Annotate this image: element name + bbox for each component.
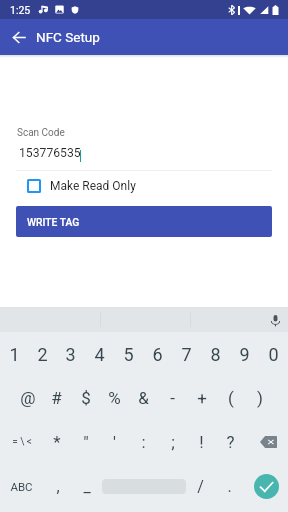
button[interactable]: @ — [14, 376, 42, 420]
staticText: ; — [171, 432, 175, 452]
button[interactable]: ! — [187, 420, 216, 464]
staticText: Make Read Only — [50, 179, 136, 193]
button[interactable]: ? — [216, 420, 245, 464]
button[interactable]: 6 — [143, 332, 172, 376]
staticText: . — [227, 477, 232, 496]
staticText: / — [197, 477, 204, 496]
button[interactable]: = \ < — [0, 420, 43, 464]
staticText: ABC — [10, 480, 33, 493]
button[interactable]: 7 — [172, 332, 201, 376]
button[interactable]: _ — [72, 464, 101, 508]
staticText: 7 — [181, 344, 192, 365]
button[interactable]: . — [215, 464, 244, 508]
button[interactable]: 0 — [259, 332, 288, 376]
staticText: NFC Setup — [36, 29, 100, 45]
staticText: 3 — [65, 344, 76, 365]
button[interactable]: ' — [100, 420, 129, 464]
button[interactable]: 5 — [114, 332, 143, 376]
staticText: 9 — [239, 344, 250, 365]
staticText: @ — [20, 388, 36, 408]
button[interactable]: 4 — [85, 332, 114, 376]
button[interactable]: 3 — [56, 332, 85, 376]
button[interactable]: Voice input — [264, 309, 286, 331]
staticText: ( — [228, 388, 234, 408]
button[interactable]: ( — [216, 376, 245, 420]
staticText: 1:25 — [10, 4, 31, 16]
staticText: + — [197, 388, 207, 408]
button[interactable]: & — [129, 376, 158, 420]
staticText: 153776535 — [19, 146, 81, 160]
button[interactable]: Back — [1, 19, 37, 55]
staticText: 2 — [37, 344, 48, 365]
button[interactable]: " — [71, 420, 100, 464]
button[interactable]: % — [100, 376, 129, 420]
button[interactable]: , — [43, 464, 72, 508]
staticText: - — [170, 388, 175, 408]
button[interactable]: Space — [101, 464, 186, 508]
staticText: % — [108, 388, 121, 408]
staticText: & — [138, 388, 149, 408]
staticText: _ — [83, 477, 91, 496]
button[interactable]: Make Read Only — [0, 174, 288, 198]
staticText: WRITE TAG — [27, 216, 80, 228]
staticText: 1 — [9, 344, 20, 365]
button[interactable]: - — [158, 376, 187, 420]
button[interactable]: 2 — [28, 332, 56, 376]
button[interactable]: # — [42, 376, 71, 420]
button[interactable]: Backspace — [245, 420, 288, 464]
staticText: ) — [257, 388, 263, 408]
staticText: $ — [81, 388, 91, 408]
button[interactable]: ) — [245, 376, 274, 420]
staticText: ' — [113, 432, 116, 452]
button[interactable]: 8 — [201, 332, 230, 376]
staticText: = \ < — [12, 436, 32, 448]
staticText: ? — [226, 432, 235, 452]
staticText: 5 — [123, 344, 134, 365]
button[interactable]: / — [186, 464, 215, 508]
staticText: : — [141, 432, 146, 452]
button[interactable]: $ — [71, 376, 100, 420]
staticText: , — [56, 477, 60, 496]
staticText: 8 — [210, 344, 221, 365]
staticText: 6 — [152, 344, 163, 365]
button[interactable]: Enter — [244, 464, 288, 508]
staticText: 4 — [94, 344, 105, 365]
button[interactable]: 9 — [230, 332, 259, 376]
button[interactable]: 1 — [0, 332, 28, 376]
button[interactable]: ; — [158, 420, 187, 464]
staticText: " — [83, 432, 89, 452]
staticText: 0 — [268, 344, 279, 365]
button[interactable]: + — [187, 376, 216, 420]
button[interactable]: WRITE TAG — [16, 206, 272, 237]
staticText: ! — [199, 432, 204, 452]
staticText: * — [53, 432, 61, 452]
staticText: Scan Code — [17, 127, 65, 139]
button[interactable]: ABC — [0, 464, 43, 508]
button[interactable]: * — [43, 420, 71, 464]
button[interactable]: : — [129, 420, 158, 464]
staticText: # — [51, 388, 62, 408]
